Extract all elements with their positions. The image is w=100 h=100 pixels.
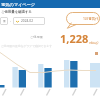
staticText: 1月電気代 bbox=[83, 16, 99, 21]
button[interactable]: 電気のマイページ bbox=[0, 0, 100, 8]
staticText: 量 bbox=[3, 19, 6, 23]
staticText: 円(税込) bbox=[89, 41, 99, 45]
staticText: 1,228 bbox=[60, 31, 89, 46]
button[interactable]: 1月電気代 bbox=[66, 12, 100, 25]
button[interactable]: 量 bbox=[0, 17, 8, 25]
staticText: 電気のマイページ bbox=[1, 2, 35, 7]
staticText: 2024-02 bbox=[21, 19, 33, 23]
staticText: ご使用量の推移をグラフで確認できます bbox=[1, 44, 53, 48]
staticText: ご使用量 bbox=[30, 35, 43, 39]
staticText: ご使用量を確認する bbox=[1, 10, 32, 14]
staticText: - bbox=[10, 19, 11, 23]
button[interactable]: 2024-02 bbox=[13, 17, 45, 25]
